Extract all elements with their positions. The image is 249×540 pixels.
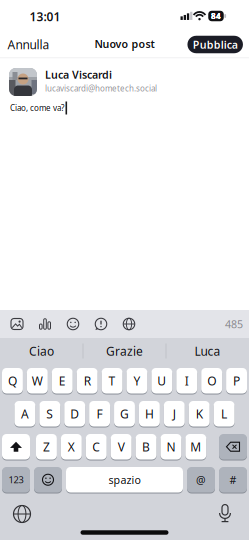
button[interactable]: N <box>160 433 181 460</box>
button[interactable]: Next keyboard <box>13 505 31 523</box>
staticText: Luca Viscardi <box>45 67 112 82</box>
button[interactable]: Dictation <box>218 504 231 523</box>
staticText: 485 <box>225 317 243 331</box>
staticText: S <box>46 406 53 422</box>
button[interactable]: V <box>111 433 132 460</box>
staticText: B <box>142 439 150 455</box>
staticText: L <box>221 406 227 422</box>
staticText: Luca <box>194 343 220 359</box>
button[interactable]: Add poll <box>38 318 51 330</box>
staticText: H <box>145 406 154 422</box>
button[interactable]: Delete <box>219 433 247 460</box>
button[interactable]: Ciao <box>0 338 82 364</box>
button[interactable]: X <box>61 433 82 460</box>
button[interactable]: Pubblica <box>187 36 243 53</box>
button[interactable]: Post visibility <box>123 318 135 330</box>
staticText: N <box>166 439 175 455</box>
staticText: Y <box>133 373 140 389</box>
button[interactable]: U <box>151 367 172 394</box>
staticText: lucaviscardi@hometech.social <box>45 83 157 94</box>
button[interactable]: @ <box>187 466 215 493</box>
button[interactable]: R <box>77 367 98 394</box>
button[interactable]: H <box>139 400 160 427</box>
button[interactable]: Z <box>36 433 57 460</box>
staticText: Q <box>8 373 17 389</box>
staticText: Ciao, come va? <box>10 103 64 113</box>
button[interactable]: P <box>226 367 247 394</box>
button[interactable]: spazio <box>66 466 183 493</box>
staticText: Nuovo post <box>94 37 154 51</box>
button[interactable]: Y <box>126 367 147 394</box>
staticText: Z <box>43 439 50 455</box>
staticText: D <box>70 406 79 422</box>
staticText: 123 <box>8 474 23 486</box>
staticText: F <box>97 406 103 422</box>
staticText: Grazie <box>106 343 143 359</box>
button[interactable]: S <box>39 400 60 427</box>
button[interactable]: Luca <box>166 338 248 364</box>
staticText: Annulla <box>7 36 49 52</box>
staticText: # <box>229 473 236 487</box>
staticText: @ <box>196 473 206 487</box>
button[interactable]: Annulla <box>7 36 49 52</box>
staticText: I <box>185 373 189 389</box>
staticText: A <box>21 406 29 422</box>
button[interactable]: Grazie <box>83 338 165 364</box>
staticText: Ciao <box>29 343 54 359</box>
staticText: W <box>32 373 43 389</box>
staticText: 84 <box>211 11 221 21</box>
button[interactable]: E <box>52 367 73 394</box>
button[interactable]: A <box>14 400 35 427</box>
staticText: J <box>173 406 176 422</box>
button[interactable]: Attach media <box>10 318 23 330</box>
button[interactable]: # <box>219 466 247 493</box>
button[interactable]: 123 <box>2 466 30 493</box>
button[interactable]: Insert emoji <box>67 318 79 330</box>
button[interactable]: W <box>27 367 48 394</box>
staticText: E <box>59 373 66 389</box>
staticText: M <box>190 439 201 455</box>
staticText: X <box>68 439 75 455</box>
staticText: T <box>108 373 115 389</box>
staticText: G <box>120 406 129 422</box>
staticText: K <box>196 406 203 422</box>
staticText: 84 <box>211 11 221 21</box>
staticText: V <box>118 439 125 455</box>
staticText: C <box>92 439 100 455</box>
button[interactable]: D <box>64 400 85 427</box>
button[interactable]: O <box>201 367 222 394</box>
staticText: R <box>84 373 91 389</box>
button[interactable]: M <box>185 433 206 460</box>
button[interactable]: C <box>86 433 107 460</box>
button[interactable]: Shift <box>2 433 30 460</box>
staticText: 84 <box>211 11 221 21</box>
button[interactable]: J <box>164 400 185 427</box>
button[interactable]: K <box>189 400 210 427</box>
staticText: spazio <box>108 473 140 487</box>
button[interactable]: G <box>114 400 135 427</box>
staticText: U <box>157 373 166 389</box>
button[interactable]: Q <box>2 367 23 394</box>
staticText: Pubblica <box>193 37 238 52</box>
button[interactable]: Content warning <box>94 317 107 330</box>
button[interactable]: F <box>89 400 110 427</box>
staticText: 13:01 <box>29 8 60 24</box>
button[interactable]: B <box>136 433 156 460</box>
button[interactable]: L <box>214 400 235 427</box>
staticText: P <box>233 373 240 389</box>
staticText: 84 <box>211 11 221 21</box>
staticText: O <box>207 373 216 389</box>
button[interactable]: Emoji <box>34 466 62 493</box>
button[interactable]: I <box>176 367 197 394</box>
button[interactable]: T <box>102 367 122 394</box>
